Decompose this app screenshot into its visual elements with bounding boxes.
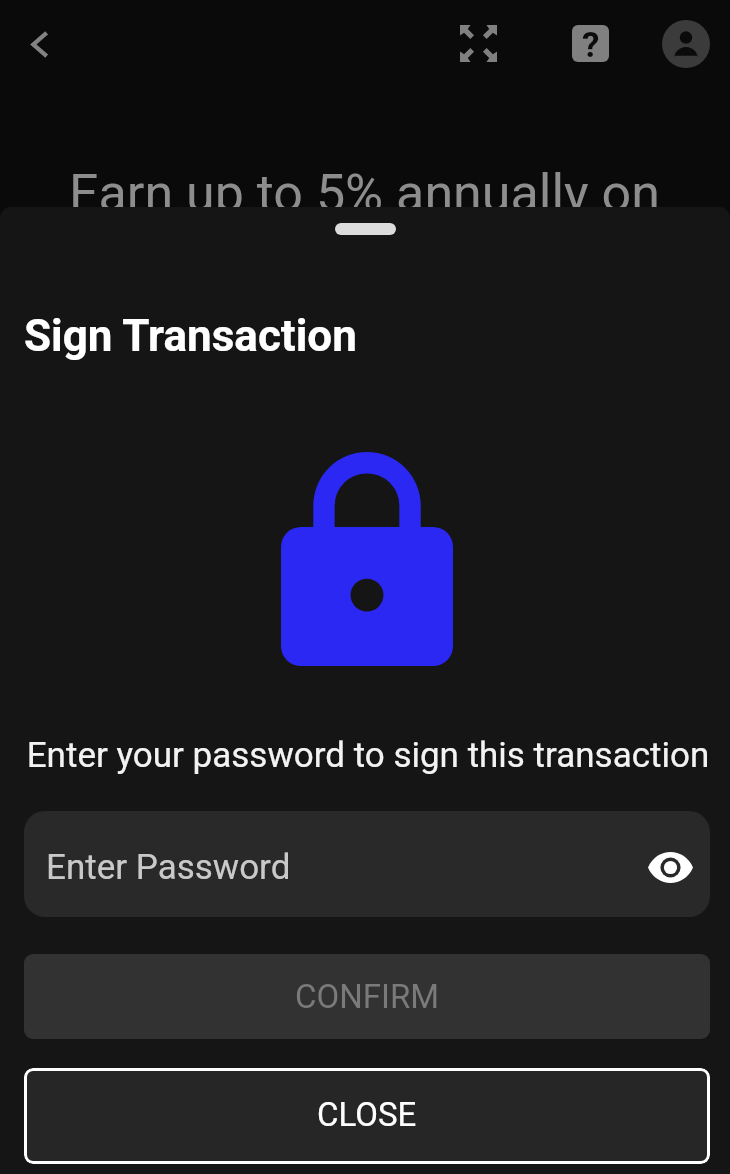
button[interactable]: Back	[15, 20, 63, 68]
staticText: CLOSE	[317, 1095, 417, 1134]
button[interactable]: Help	[562, 15, 619, 72]
button[interactable]: Enter Password	[24, 811, 710, 917]
button[interactable]: CLOSE	[24, 1068, 710, 1164]
staticText: Sign Transaction	[24, 310, 357, 362]
staticText: CONFIRM	[295, 977, 440, 1016]
button[interactable]: Account	[652, 10, 720, 78]
button[interactable]: CONFIRM	[24, 954, 710, 1039]
button[interactable]: Show password	[644, 841, 696, 893]
button[interactable]: Fullscreen	[448, 13, 509, 74]
staticText: ?	[582, 25, 600, 62]
staticText: Earn up to 5% annually on	[69, 163, 660, 224]
staticText: Enter Password	[46, 847, 291, 888]
staticText: Enter your password to sign this transac…	[25, 735, 711, 776]
